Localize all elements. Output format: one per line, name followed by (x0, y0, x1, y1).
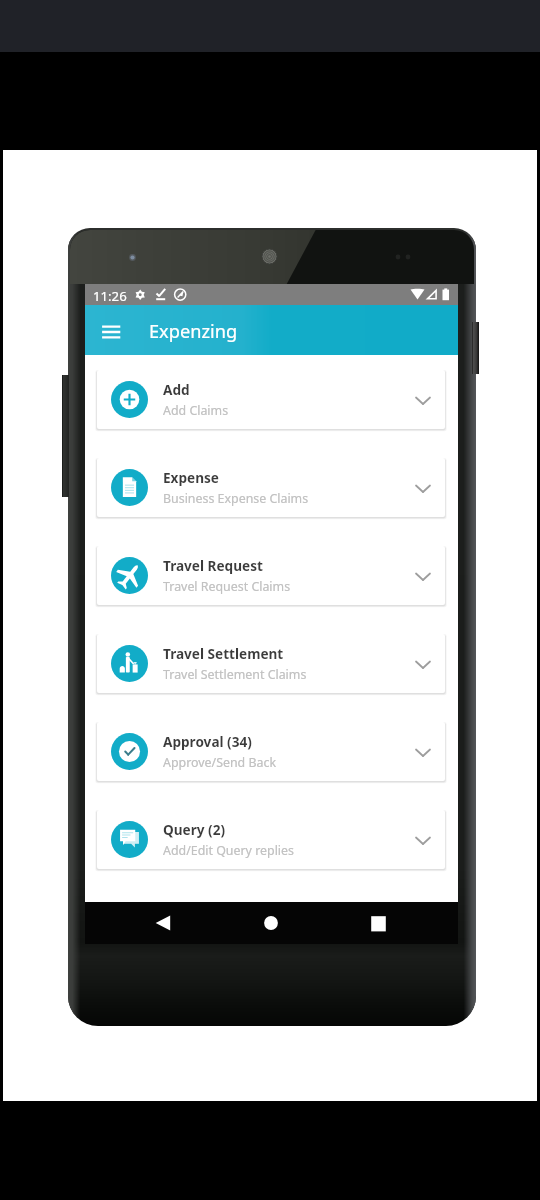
button[interactable]: Approval (34) (97, 722, 445, 781)
staticText: Travel Request Claims (163, 578, 291, 595)
staticText: Expense (163, 468, 219, 487)
staticText: Business Expense Claims (163, 490, 309, 507)
button[interactable]: Query (2) (97, 810, 445, 869)
staticText: Travel Request (163, 556, 263, 575)
button[interactable]: Travel Request (97, 546, 445, 605)
staticText: 11:26 (93, 287, 127, 305)
button[interactable]: Home (251, 902, 291, 944)
button[interactable]: Add (97, 370, 445, 429)
button[interactable]: Open navigation menu (96, 316, 124, 344)
staticText: Approval (34) (163, 732, 252, 751)
button[interactable]: Recent apps (358, 902, 398, 944)
staticText: Expenzing (149, 319, 238, 344)
button[interactable]: Travel Settlement (97, 634, 445, 693)
button[interactable]: Expense (97, 458, 445, 517)
button[interactable]: Back (143, 902, 183, 944)
staticText: Query (2) (163, 820, 226, 839)
staticText: Approve/Send Back (163, 754, 277, 771)
staticText: Add (163, 380, 190, 399)
staticText: Add/Edit Query replies (163, 842, 294, 859)
staticText: Add Claims (163, 402, 229, 419)
staticText: Travel Settlement (163, 644, 284, 663)
staticText: Travel Settlement Claims (163, 666, 307, 683)
